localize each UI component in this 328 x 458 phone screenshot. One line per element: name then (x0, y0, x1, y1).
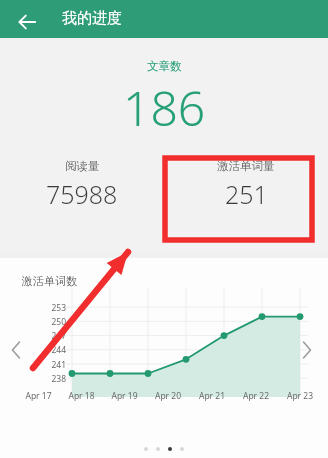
staticText: Apr 21 (190, 390, 234, 402)
staticText: 186 (123, 75, 206, 140)
staticText: 我的进度 (62, 9, 122, 28)
staticText: 241 (36, 359, 66, 371)
staticText: 文章数 (147, 59, 182, 73)
staticText: Apr 17 (17, 390, 60, 402)
staticText: 253 (36, 302, 66, 314)
staticText: 阅读量 (65, 159, 100, 173)
button[interactable]: 阅读量 (0, 159, 164, 211)
staticText: 251 (225, 177, 268, 211)
button[interactable]: 激活单词量 (164, 159, 328, 211)
staticText: 75988 (46, 177, 118, 211)
staticText: 238 (36, 373, 66, 385)
button[interactable]: Next (295, 338, 319, 362)
staticText: Apr 23 (278, 390, 322, 402)
staticText: 247 (36, 330, 66, 342)
button[interactable]: Previous (4, 338, 28, 362)
staticText: 激活单词数 (22, 274, 77, 288)
staticText: Apr 18 (60, 390, 103, 402)
staticText: 244 (36, 344, 66, 356)
staticText: 激活单词量 (217, 159, 275, 173)
staticText: Apr 22 (234, 390, 278, 402)
staticText: 250 (36, 316, 66, 328)
button[interactable]: Back (12, 7, 42, 37)
staticText: Apr 20 (146, 390, 190, 402)
staticText: Apr 19 (103, 390, 146, 402)
